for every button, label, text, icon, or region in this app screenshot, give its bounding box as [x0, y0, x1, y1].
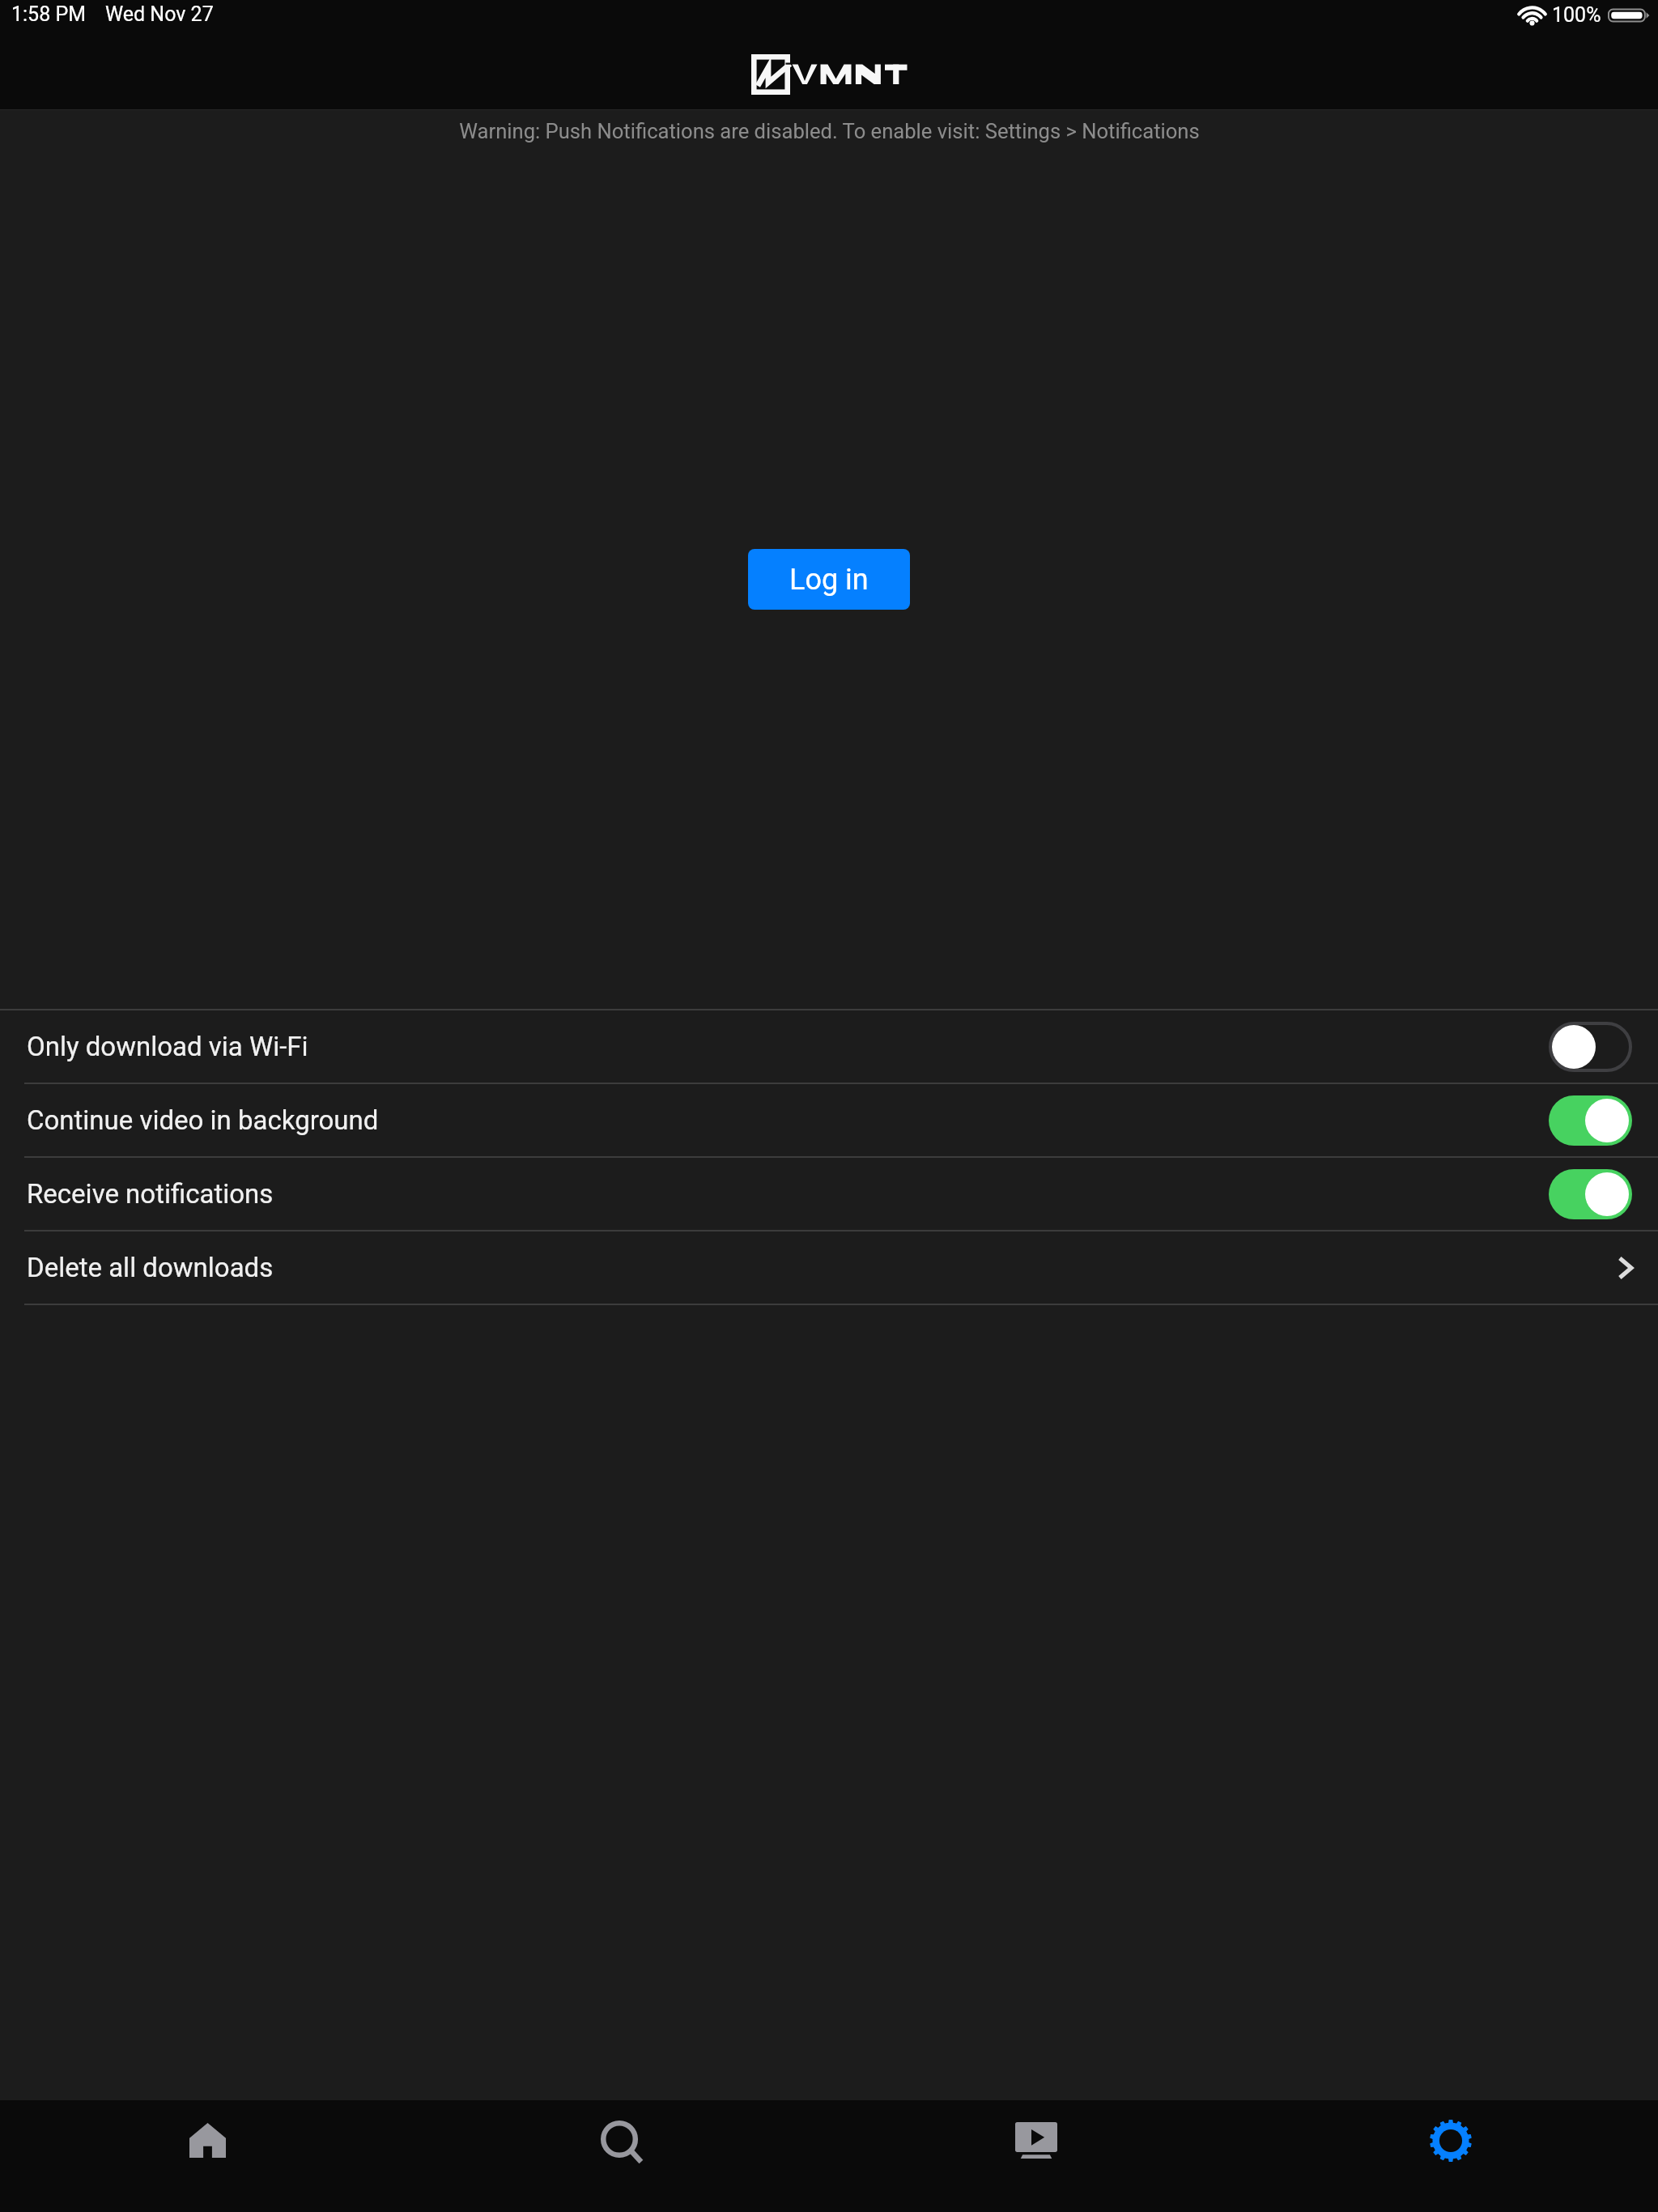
button[interactable]: Only download via Wi-Fi, off — [1549, 1022, 1632, 1072]
button[interactable]: Only download via Wi-Fi — [0, 1010, 1658, 1083]
staticText: Delete all downloads — [27, 1252, 274, 1283]
button[interactable]: Home — [0, 2100, 414, 2212]
staticText: 1:58 PM — [11, 2, 87, 26]
button[interactable]: Delete all downloads — [1605, 1254, 1632, 1282]
button[interactable]: Continue video in background, on — [1549, 1095, 1632, 1146]
staticText: Warning: Push Notifications are disabled… — [459, 119, 1200, 143]
staticText: 100% — [1552, 3, 1601, 27]
button[interactable]: Live TV — [829, 2100, 1243, 2212]
button[interactable]: Search — [414, 2100, 829, 2212]
button[interactable]: Delete all downloads — [0, 1231, 1658, 1304]
staticText: Log in — [789, 563, 869, 597]
staticText: Wed Nov 27 — [105, 2, 214, 26]
staticText: Only download via Wi-Fi — [27, 1031, 308, 1062]
button[interactable]: Settings — [1243, 2100, 1658, 2212]
button[interactable]: Log in — [748, 549, 910, 610]
button[interactable]: Receive notifications — [0, 1158, 1658, 1230]
button[interactable]: Receive notifications, on — [1549, 1169, 1632, 1219]
staticText: Receive notifications — [27, 1178, 274, 1210]
button[interactable]: Continue video in background — [0, 1084, 1658, 1156]
staticText: Continue video in background — [27, 1104, 379, 1136]
